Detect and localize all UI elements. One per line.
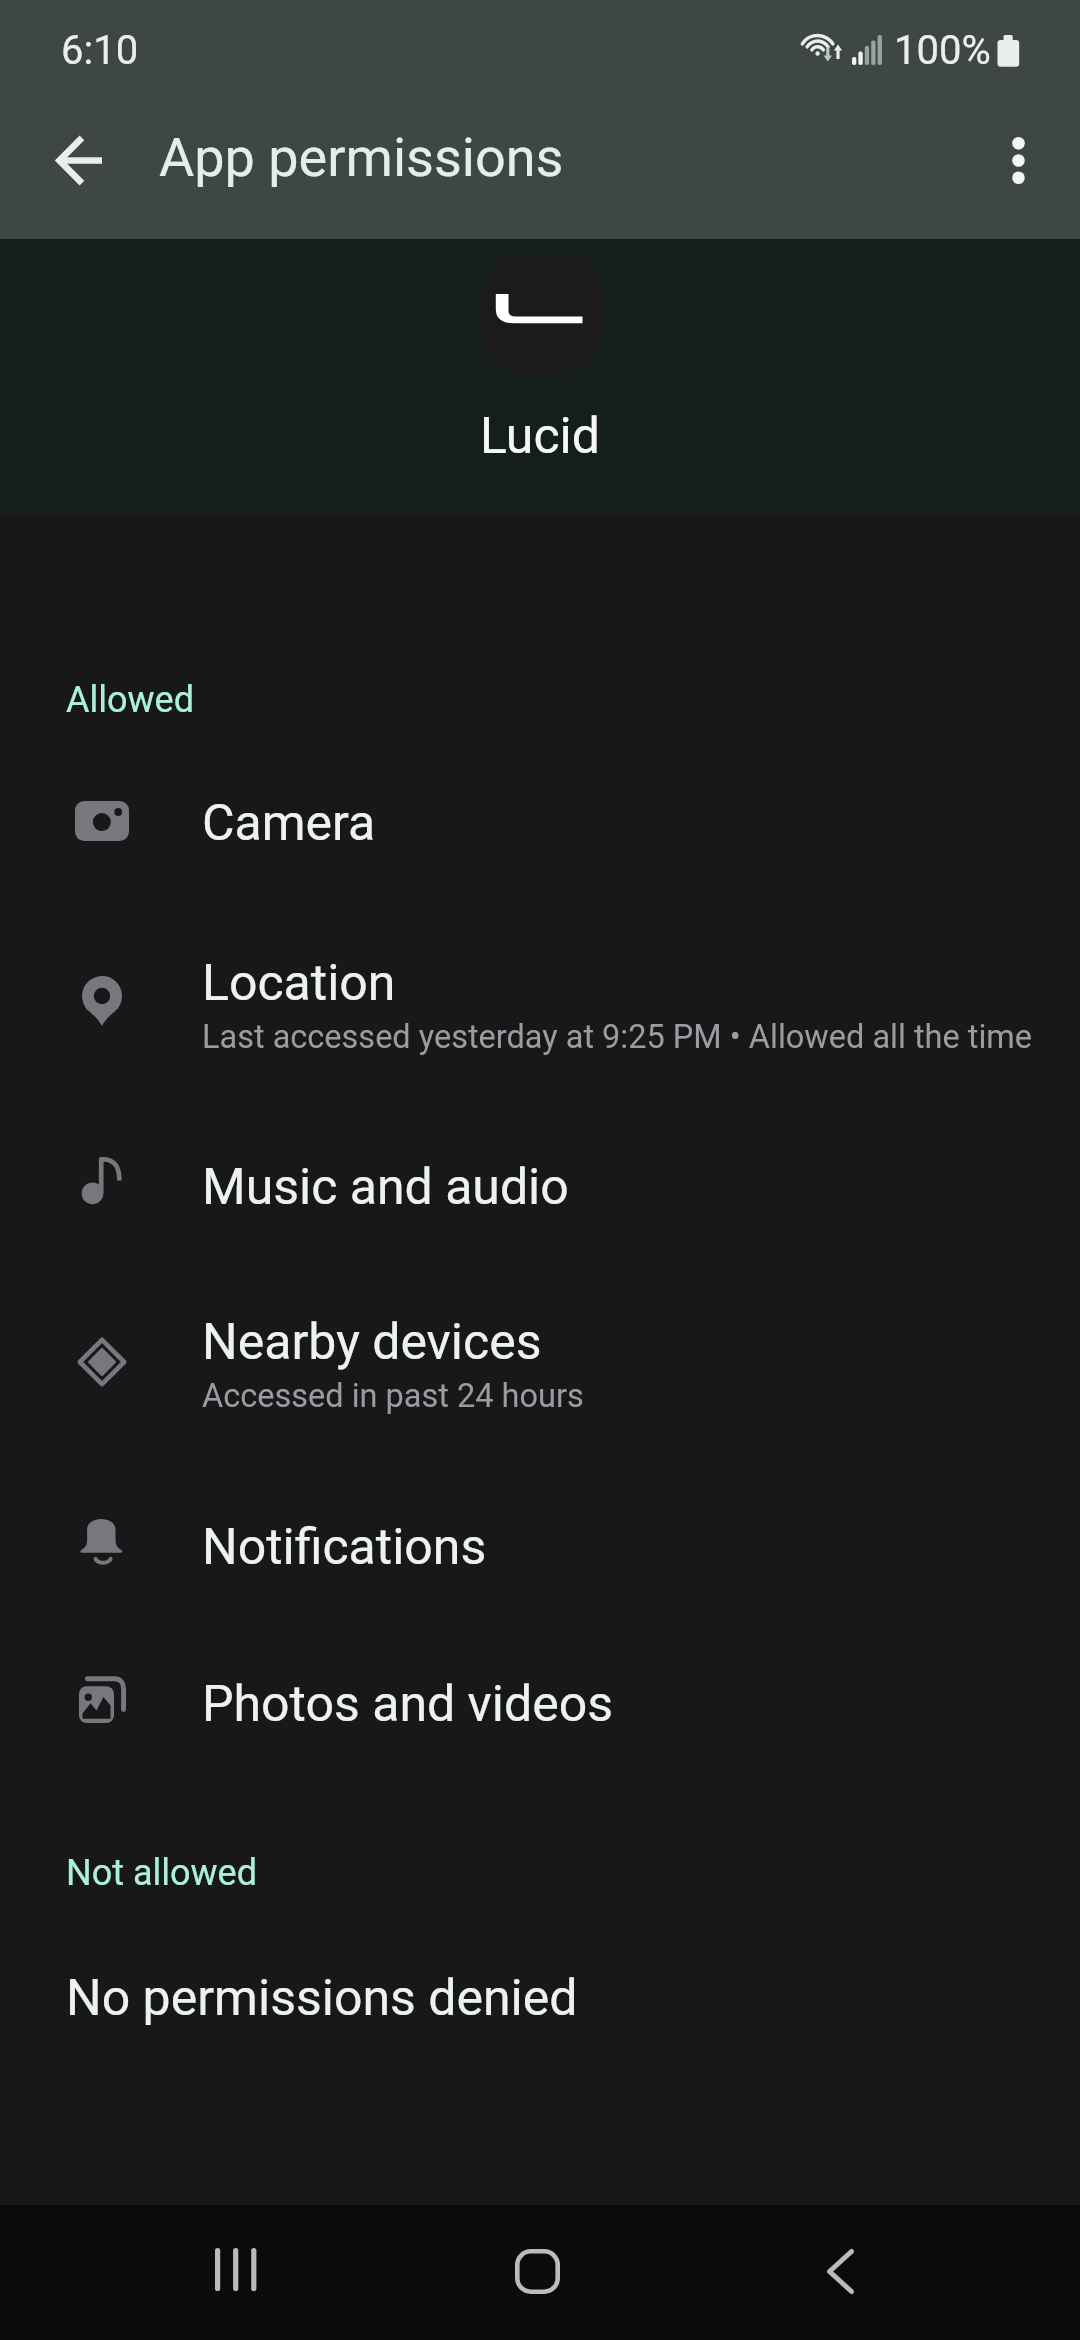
staticText: Accessed in past 24 hours xyxy=(202,1377,584,1415)
button[interactable]: Home xyxy=(457,2224,617,2319)
button[interactable]: Navigate up xyxy=(25,106,133,214)
staticText: Music and audio xyxy=(202,1158,569,1217)
staticText: 100% xyxy=(894,27,991,74)
staticText: Lucid xyxy=(480,407,600,466)
staticText: App permissions xyxy=(159,126,564,189)
staticText: No permissions denied xyxy=(66,1969,578,2028)
staticText: Camera xyxy=(202,794,376,853)
button[interactable]: Location xyxy=(0,904,1080,1107)
button[interactable]: Recent apps xyxy=(155,2222,315,2317)
staticText: Nearby devices xyxy=(202,1313,542,1372)
staticText: Not allowed xyxy=(66,1852,257,1894)
button[interactable]: More options xyxy=(964,106,1072,214)
staticText: Last accessed yesterday at 9:25 PM • All… xyxy=(202,1018,1033,1056)
button[interactable]: Camera xyxy=(0,744,1080,902)
button[interactable]: Back xyxy=(760,2224,920,2319)
button[interactable]: Nearby devices xyxy=(0,1263,1080,1466)
button[interactable]: Photos and videos xyxy=(0,1625,1080,1783)
staticText: Photos and videos xyxy=(202,1675,614,1734)
staticText: Location xyxy=(202,954,396,1013)
staticText: 6:10 xyxy=(61,27,139,74)
button[interactable]: Notifications xyxy=(0,1468,1080,1626)
staticText: Allowed xyxy=(66,679,194,721)
button[interactable]: Music and audio xyxy=(0,1108,1080,1266)
staticText: Notifications xyxy=(202,1518,487,1577)
